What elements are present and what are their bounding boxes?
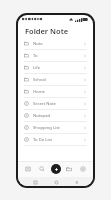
staticText: To Do List [33,137,83,143]
button[interactable]: To Do List [18,134,93,146]
staticText: Home [33,89,83,95]
staticText: Shopping List [33,125,83,131]
button[interactable]: Notepad [18,110,93,122]
button[interactable]: Shopping List [18,122,93,134]
button[interactable]: Add note [51,164,61,174]
button[interactable]: Back [73,179,79,185]
button[interactable]: Secret Note [18,98,93,110]
staticText: Life [33,65,83,71]
button[interactable]: Note [18,38,93,50]
staticText: Note [33,41,83,47]
button[interactable]: Folders [63,162,75,176]
button[interactable]: Recent apps [32,179,38,185]
button[interactable]: Search [36,162,48,176]
button[interactable]: Home [18,86,93,98]
staticText: School [33,77,83,83]
button[interactable]: Life [18,62,93,74]
button[interactable]: School [18,74,93,86]
button[interactable]: Settings [77,162,89,176]
button[interactable]: To [18,50,93,62]
button[interactable]: Home [53,179,59,185]
staticText: To [33,53,83,59]
staticText: Folder Note [25,26,69,36]
button[interactable]: Home [22,162,34,176]
staticText: Notepad [33,113,83,119]
staticText: Secret Note [33,101,83,107]
